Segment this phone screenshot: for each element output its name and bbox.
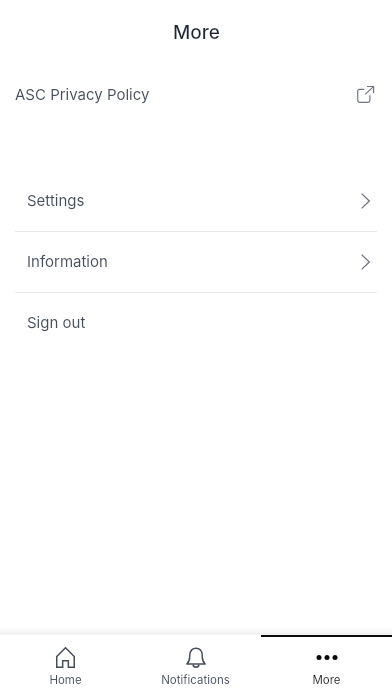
staticText: More [312, 673, 341, 687]
button[interactable]: More [261, 637, 392, 696]
button[interactable]: Information [0, 232, 392, 293]
button[interactable]: Notifications [130, 637, 261, 696]
button[interactable]: Home [0, 637, 130, 696]
button[interactable]: ASC Privacy Policy [0, 67, 392, 121]
button[interactable]: Settings [0, 171, 392, 232]
staticText: Notifications [161, 673, 230, 687]
button[interactable]: Sign out [0, 293, 392, 354]
staticText: ASC Privacy Policy [15, 85, 150, 103]
staticText: Settings [27, 191, 85, 209]
staticText: More [173, 21, 220, 44]
staticText: Home [49, 673, 82, 687]
staticText: Sign out [27, 313, 86, 331]
staticText: Information [27, 252, 108, 270]
button[interactable]: Open ASC Privacy Policy [357, 85, 375, 103]
